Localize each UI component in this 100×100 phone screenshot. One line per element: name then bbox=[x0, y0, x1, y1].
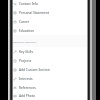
staticText: Personal Statement bbox=[19, 11, 50, 15]
button[interactable]: Contact Info bbox=[11, 0, 87, 8]
button[interactable]: Personal Statement bbox=[11, 8, 87, 17]
button[interactable]: Add Photo bbox=[11, 92, 87, 99]
staticText: OPTIONAL SECTIONS bbox=[13, 41, 37, 44]
staticText: Career bbox=[19, 20, 30, 24]
button[interactable]: Add Custom Section bbox=[11, 65, 87, 74]
staticText: References bbox=[19, 86, 36, 90]
staticText: Education bbox=[19, 29, 35, 33]
button[interactable]: Key Skills bbox=[11, 47, 87, 56]
staticText: Add Photo bbox=[19, 94, 35, 98]
staticText: Interests bbox=[19, 77, 33, 81]
staticText: Key Skills bbox=[19, 50, 33, 54]
staticText: Projects bbox=[19, 59, 32, 63]
button[interactable]: Interests bbox=[11, 74, 87, 83]
staticText: Contact Info bbox=[19, 2, 38, 6]
staticText: Add Custom Section bbox=[19, 68, 50, 72]
button[interactable]: Projects bbox=[11, 56, 87, 65]
button[interactable]: Education bbox=[11, 26, 87, 35]
button[interactable]: Career bbox=[11, 17, 87, 26]
button[interactable]: References bbox=[11, 83, 87, 92]
